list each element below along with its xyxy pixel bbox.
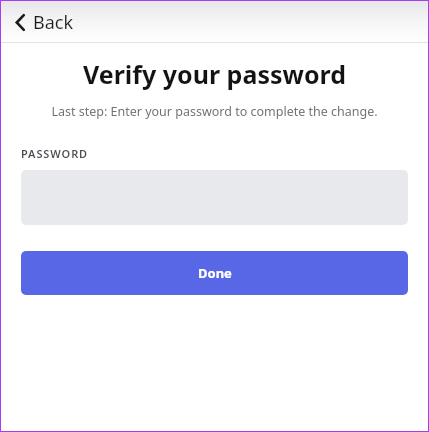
staticText: Done — [198, 264, 232, 282]
staticText: Back — [33, 10, 74, 35]
button[interactable]: Done — [21, 251, 408, 295]
staticText: PASSWORD — [21, 146, 89, 161]
staticText: Last step: Enter your password to comple… — [1, 103, 428, 120]
button[interactable]: Back — [11, 6, 78, 39]
staticText: Verify your password — [1, 57, 428, 91]
